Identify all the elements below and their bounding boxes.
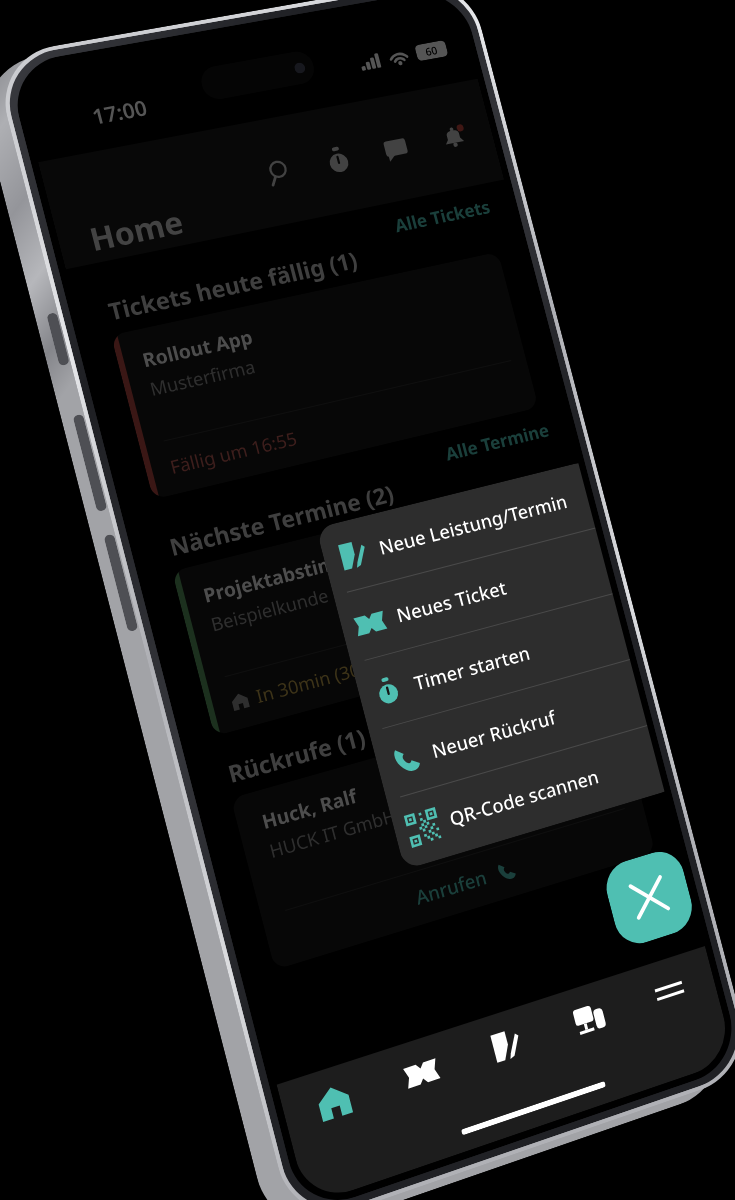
staticText: Musterfirma [147, 354, 258, 402]
staticText: Anrufen [413, 864, 489, 911]
staticText: Projektabstimmung [200, 536, 392, 609]
button[interactable]: Rollout App [111, 252, 539, 500]
staticText: Fällig um 16:55 [167, 426, 300, 480]
button[interactable]: Nachrichten [361, 118, 432, 179]
staticText: Neuer Rückruf [429, 704, 559, 764]
button[interactable]: Anrufen [288, 820, 634, 949]
staticText: Alle Tickets [392, 195, 493, 238]
button[interactable]: Alle Tickets [392, 195, 493, 238]
button[interactable]: Menü schließen [600, 845, 698, 950]
staticText: Timer starten [411, 640, 533, 696]
staticText: HUCK IT GmbH [267, 803, 399, 864]
button[interactable]: Menü [634, 951, 705, 1032]
staticText: Beispielkunde [208, 583, 331, 637]
button[interactable]: Huck, Ralf [230, 690, 656, 970]
button[interactable]: Timer starten [364, 594, 630, 728]
button[interactable]: Neue Leistung/Termin [328, 463, 595, 592]
staticText: Rollout App [140, 324, 256, 373]
button[interactable]: Geräte [552, 977, 626, 1059]
button[interactable]: Benachrichtigungen [419, 107, 488, 167]
staticText: Nächste Termine (2) [166, 477, 397, 562]
staticText: Rückrufe (1) [224, 720, 369, 789]
button[interactable]: QR-Code scannen [399, 726, 664, 865]
staticText: Alle Termine [443, 418, 552, 466]
button[interactable]: Alle Termine [443, 418, 552, 466]
button[interactable]: Tickets [383, 1031, 459, 1116]
button[interactable]: Projektabstimmung [172, 475, 598, 736]
button[interactable]: Home [294, 1059, 373, 1145]
button[interactable]: Suche [243, 141, 315, 203]
staticText: 17:00 [89, 93, 150, 132]
button[interactable]: Neues Ticket [346, 528, 612, 660]
staticText: Home [85, 200, 188, 260]
staticText: Neue Leistung/Termin [376, 488, 570, 561]
staticText: Tickets heute fällig (1) [105, 244, 361, 326]
staticText: In 30min (30min) [253, 647, 399, 709]
staticText: Huck, Ralf [259, 783, 360, 835]
button[interactable]: Timer [302, 130, 374, 191]
staticText: Neues Ticket [394, 575, 509, 629]
button[interactable]: Neuer Rückruf [382, 660, 647, 797]
staticText: 60 [424, 42, 439, 59]
button[interactable]: Leistungen [468, 1004, 543, 1087]
staticText: QR-Code scannen [447, 763, 602, 832]
